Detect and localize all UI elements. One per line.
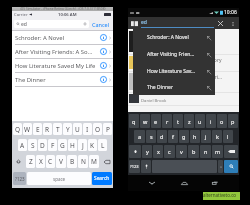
button[interactable]: o xyxy=(217,114,227,128)
button[interactable]: W xyxy=(23,123,32,135)
staticText: u xyxy=(198,118,202,125)
button[interactable]: c xyxy=(164,145,175,158)
button[interactable]: Schroder: A Novel - An Amity Story xyxy=(129,54,240,71)
staticText: J xyxy=(82,141,84,150)
button[interactable]: Daniel Brook xyxy=(129,92,240,105)
button[interactable]: Search xyxy=(92,172,112,185)
button[interactable]: Backspace xyxy=(102,155,112,168)
button[interactable]: b xyxy=(188,145,199,158)
button[interactable]: Search xyxy=(224,160,238,173)
button[interactable]: Backspace xyxy=(224,145,238,158)
button[interactable]: After Visiting Frien… xyxy=(133,46,215,63)
button[interactable]: N xyxy=(78,155,88,168)
button[interactable]: h xyxy=(190,130,200,143)
button[interactable]: w xyxy=(140,114,150,128)
button[interactable]: ?123 xyxy=(13,172,26,185)
button[interactable]: F xyxy=(48,139,57,151)
staticText: space xyxy=(53,176,66,182)
button[interactable]: m xyxy=(212,145,223,158)
button[interactable]: Home xyxy=(176,175,192,191)
button[interactable]: Back xyxy=(144,175,160,191)
button[interactable]: Shift xyxy=(129,145,141,158)
button[interactable]: l xyxy=(223,130,233,143)
button[interactable]: The Dinner xyxy=(133,80,215,95)
staticText: o xyxy=(220,118,224,125)
staticText: l xyxy=(227,133,229,140)
button[interactable]: The Dinner xyxy=(12,73,113,86)
staticText: G xyxy=(60,141,65,150)
button[interactable]: Schroder: A Novel xyxy=(133,29,215,46)
button[interactable]: H xyxy=(68,139,77,151)
button[interactable]: e xyxy=(151,114,161,128)
button[interactable]: y xyxy=(142,145,152,158)
button[interactable]: Schroder: A Novel xyxy=(12,31,113,44)
button[interactable]: U xyxy=(73,123,82,135)
button[interactable]: Z xyxy=(26,155,35,168)
button[interactable]: j xyxy=(201,130,211,143)
button[interactable]: E xyxy=(33,123,42,135)
button[interactable]: X xyxy=(36,155,45,168)
button[interactable]: i xyxy=(206,114,216,128)
staticText: Schroder: A Novel xyxy=(15,34,65,42)
staticText: p xyxy=(231,118,235,125)
button[interactable]: n xyxy=(200,145,211,158)
button[interactable]: S xyxy=(28,139,37,151)
button[interactable]: The Unwinding: An Inner Hist xyxy=(129,29,240,54)
button[interactable]: K xyxy=(88,139,97,151)
button[interactable]: J xyxy=(78,139,87,151)
button[interactable]: q xyxy=(129,114,139,128)
button[interactable]: After Visiting Friends: A Son Stori… xyxy=(129,71,240,92)
staticText: The Unwinding: An Inner Hist xyxy=(141,32,211,39)
button[interactable]: Period xyxy=(218,160,223,173)
button[interactable]: More options xyxy=(228,19,237,28)
button[interactable]: How Literature Saved My Life xyxy=(12,59,113,72)
button[interactable]: L xyxy=(98,139,107,151)
button[interactable]: z xyxy=(184,114,194,128)
staticText: Y xyxy=(66,125,70,134)
button[interactable]: My library xyxy=(130,19,138,27)
button[interactable]: O xyxy=(93,123,102,135)
button[interactable]: u xyxy=(195,114,205,128)
button[interactable]: ed xyxy=(14,20,89,28)
button[interactable]: k xyxy=(212,130,222,143)
button[interactable]: r xyxy=(162,114,172,128)
button[interactable]: Shift xyxy=(13,155,23,168)
button[interactable]: P xyxy=(103,123,112,135)
button[interactable]: B xyxy=(67,155,77,168)
button[interactable]: Y xyxy=(63,123,72,135)
staticText: L xyxy=(101,141,105,150)
button[interactable]: Cancel xyxy=(91,21,111,28)
button[interactable]: V xyxy=(56,155,66,168)
staticText: O xyxy=(95,125,101,134)
button[interactable]: v xyxy=(176,145,187,158)
button[interactable]: D xyxy=(38,139,47,151)
button[interactable]: Recent apps xyxy=(207,175,223,191)
staticText: m xyxy=(215,148,221,155)
button[interactable]: C xyxy=(46,155,55,168)
button[interactable]: t xyxy=(173,114,183,128)
button[interactable]: M xyxy=(89,155,99,168)
button[interactable]: R xyxy=(43,123,52,135)
button[interactable]: g xyxy=(179,130,189,143)
button[interactable]: p xyxy=(228,114,238,128)
button[interactable]: x xyxy=(153,145,163,158)
button[interactable]: After Visiting Friends: A So… xyxy=(12,45,113,58)
button[interactable]: f xyxy=(168,130,178,143)
button[interactable]: G xyxy=(58,139,67,151)
button[interactable]: a xyxy=(134,130,145,143)
button[interactable]: Q xyxy=(13,123,22,135)
staticText: M xyxy=(91,157,97,166)
button[interactable]: Clear xyxy=(216,19,225,28)
button[interactable]: ?123 xyxy=(129,160,140,173)
button[interactable]: A xyxy=(18,139,27,151)
button[interactable]: d xyxy=(157,130,167,143)
button[interactable]: T xyxy=(53,123,62,135)
staticText: h xyxy=(193,133,197,140)
button[interactable]: How Literature Sav… xyxy=(133,63,215,80)
button[interactable]: I xyxy=(83,123,92,135)
staticText: After Visiting Friends: A So… xyxy=(15,48,93,56)
button[interactable]: s xyxy=(146,130,156,143)
button[interactable]: Voice input xyxy=(141,160,151,173)
button[interactable]: space xyxy=(27,172,91,185)
